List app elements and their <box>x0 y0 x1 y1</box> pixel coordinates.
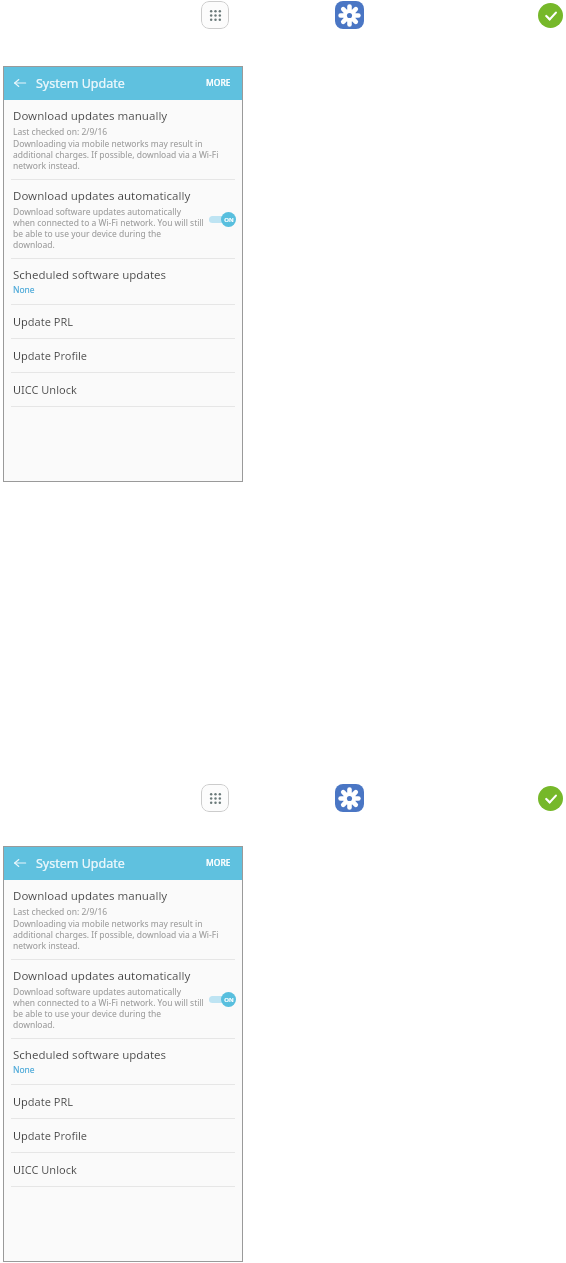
button[interactable]: Download updates automatically, on <box>208 210 237 228</box>
button[interactable]: Update PRL <box>3 1085 243 1118</box>
staticText: ON <box>224 996 234 1004</box>
staticText: Download updates automatically <box>13 968 191 984</box>
button[interactable]: Back <box>12 855 28 871</box>
staticText: None <box>13 1064 35 1076</box>
button[interactable]: Scheduled software updates <box>3 259 243 304</box>
staticText: MORE <box>206 857 231 869</box>
button[interactable]: MORE <box>204 72 233 94</box>
staticText: ON <box>224 216 234 224</box>
button[interactable]: Update Profile <box>3 339 243 372</box>
button[interactable]: Scheduled software updates <box>3 1039 243 1084</box>
button[interactable]: UICC Unlock <box>3 373 243 406</box>
staticText: Download updates manually <box>13 888 168 904</box>
staticText: Download software updates automatically … <box>13 206 205 250</box>
staticText: Update Profile <box>13 348 88 363</box>
button[interactable]: Back <box>12 75 28 91</box>
staticText: Last checked on: 2/9/16 <box>13 906 108 918</box>
button[interactable]: Download updates manually <box>3 100 243 179</box>
button[interactable]: Done <box>538 786 563 811</box>
button[interactable]: Settings <box>335 784 364 812</box>
button[interactable]: Apps <box>201 1 229 29</box>
button[interactable]: Download updates automatically <box>3 960 243 1038</box>
button[interactable]: Download updates automatically, on <box>208 990 237 1008</box>
button[interactable]: Done <box>538 3 563 28</box>
button[interactable]: MORE <box>204 852 233 874</box>
staticText: System Update <box>36 855 204 872</box>
staticText: Update PRL <box>13 314 74 329</box>
button[interactable]: UICC Unlock <box>3 1153 243 1186</box>
staticText: Update PRL <box>13 1094 74 1109</box>
staticText: Update Profile <box>13 1128 88 1143</box>
button[interactable]: Update Profile <box>3 1119 243 1152</box>
staticText: Last checked on: 2/9/16 <box>13 126 108 138</box>
staticText: Download updates manually <box>13 108 168 124</box>
staticText: UICC Unlock <box>13 382 77 397</box>
staticText: Download software updates automatically … <box>13 986 205 1030</box>
staticText: System Update <box>36 75 204 92</box>
staticText: UICC Unlock <box>13 1162 77 1177</box>
button[interactable]: Download updates manually <box>3 880 243 959</box>
button[interactable]: Settings <box>335 1 364 29</box>
staticText: None <box>13 284 35 296</box>
button[interactable]: Apps <box>201 784 229 812</box>
staticText: Scheduled software updates <box>13 267 167 283</box>
staticText: Downloading via mobile networks may resu… <box>13 918 231 951</box>
staticText: MORE <box>206 77 231 89</box>
button[interactable]: Download updates automatically <box>3 180 243 258</box>
staticText: Download updates automatically <box>13 188 191 204</box>
staticText: Scheduled software updates <box>13 1047 167 1063</box>
staticText: Downloading via mobile networks may resu… <box>13 138 231 171</box>
button[interactable]: Update PRL <box>3 305 243 338</box>
